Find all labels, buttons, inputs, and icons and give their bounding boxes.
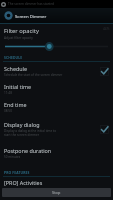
staticText: SCHEDULE (4, 55, 23, 60)
staticText: End time (4, 101, 27, 108)
staticText: Display a dialog at the initial time to … (4, 129, 57, 137)
staticText: [PRO] Activities (4, 179, 43, 186)
button[interactable]: Postpone duration (0, 142, 113, 163)
button[interactable]: End time (0, 98, 113, 116)
button[interactable]: Initial time (0, 80, 113, 98)
staticText: 08:50 (4, 109, 12, 113)
staticText: Adjust filter opacity (4, 36, 33, 40)
staticText: Schedule (4, 65, 27, 72)
staticText: Initial time (4, 83, 32, 90)
button[interactable]: Stop (2, 188, 111, 197)
staticText: PRO FEATURES (4, 170, 30, 175)
button[interactable]: Toggle (97, 122, 111, 136)
staticText: 11:48 (4, 91, 12, 95)
button[interactable]: Toggle (97, 64, 111, 78)
button[interactable]: Schedule (0, 62, 113, 80)
staticText: Filter opacity (4, 27, 39, 35)
button[interactable]: Filter opacity (0, 24, 113, 53)
staticText: Display dialog (4, 121, 40, 128)
staticText: The screen dimmer has started (8, 2, 54, 6)
staticText: 50 minutes (4, 155, 21, 159)
button[interactable]: [PRO] Activities (0, 177, 113, 188)
staticText: 44% (103, 27, 110, 31)
staticText: Stop (52, 190, 61, 195)
staticText: Schedule the start of the screen dimmer (4, 73, 63, 77)
staticText: Postpone duration (4, 147, 52, 154)
staticText: Screen Dimmer (15, 13, 47, 19)
button[interactable]: Display dialog (0, 116, 113, 142)
